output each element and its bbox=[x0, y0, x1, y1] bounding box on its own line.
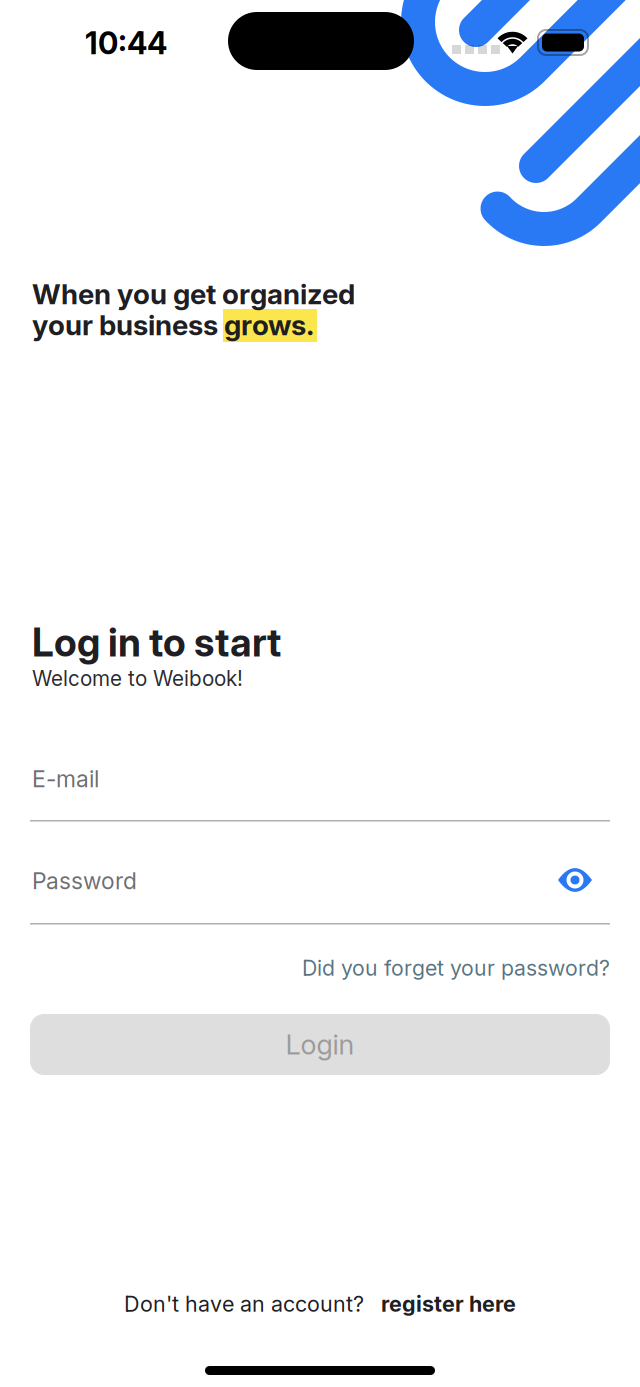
staticText: your business grows. bbox=[32, 308, 314, 342]
staticText: E-mail bbox=[32, 765, 99, 793]
staticText: Did you forget your password? bbox=[302, 955, 610, 981]
staticText: Password bbox=[32, 867, 137, 895]
staticText: Log in to start bbox=[32, 619, 281, 666]
button[interactable]: Show password bbox=[0, 0, 595, 897]
staticText: 10:44 bbox=[85, 24, 167, 61]
button[interactable]: register here bbox=[364, 1291, 516, 1317]
staticText: When you get organized bbox=[32, 277, 355, 311]
button[interactable]: Did you forget your password? bbox=[0, 0, 610, 983]
staticText: Login bbox=[285, 1028, 354, 1061]
button[interactable]: Login bbox=[0, 0, 610, 1075]
staticText: Don't have an account? bbox=[124, 1291, 364, 1317]
staticText: Welcome to Weibook! bbox=[32, 666, 243, 691]
staticText: register here bbox=[381, 1291, 516, 1317]
